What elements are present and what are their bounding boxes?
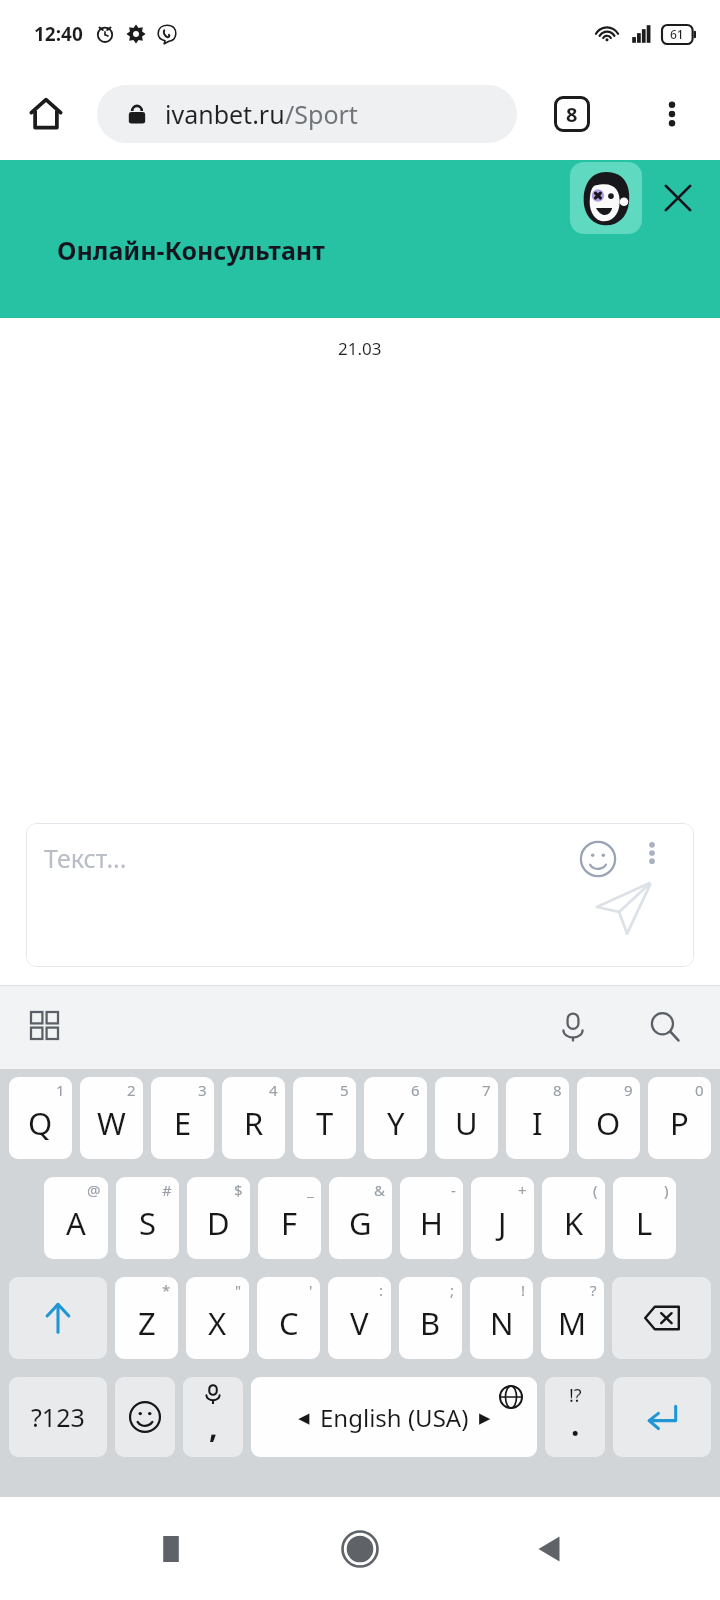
staticText: 2 <box>127 1080 136 1100</box>
button[interactable]: 7 <box>435 1077 498 1159</box>
staticText: 3 <box>198 1080 207 1100</box>
staticText: @ <box>87 1180 101 1200</box>
button[interactable]: 4 <box>222 1077 285 1159</box>
staticText: X <box>208 1302 227 1344</box>
button[interactable]: : <box>328 1277 391 1359</box>
button[interactable]: Recents <box>140 1518 202 1580</box>
staticText: 1 <box>56 1080 65 1100</box>
staticText: B <box>420 1302 441 1344</box>
staticText: J <box>498 1202 507 1244</box>
button[interactable]: ' <box>257 1277 320 1359</box>
staticText: $ <box>234 1180 243 1200</box>
button[interactable]: 6 <box>364 1077 427 1159</box>
staticText: 8 <box>553 1080 562 1100</box>
staticText: ivanbet.ru <box>165 97 285 131</box>
button[interactable]: 2 <box>80 1077 143 1159</box>
staticText: V <box>350 1302 369 1344</box>
button[interactable]: ! <box>470 1277 533 1359</box>
staticText: I <box>532 1102 543 1144</box>
button[interactable]: Search <box>638 1000 692 1054</box>
staticText: U <box>455 1102 478 1144</box>
staticText: C <box>279 1302 299 1344</box>
button[interactable]: 1 <box>9 1077 72 1159</box>
button[interactable]: ivanbet.ru <box>97 85 517 143</box>
button[interactable]: * <box>115 1277 178 1359</box>
button[interactable]: Emoji <box>115 1377 175 1457</box>
staticText: . <box>571 1404 580 1445</box>
button[interactable]: Chat menu <box>632 833 672 873</box>
staticText: Q <box>28 1102 53 1144</box>
staticText: ) <box>664 1180 669 1200</box>
staticText: O <box>596 1102 621 1144</box>
staticText: L <box>636 1202 653 1244</box>
staticText: 8 <box>566 101 578 128</box>
staticText: ?123 <box>31 1400 85 1434</box>
button[interactable]: Clipboard <box>20 1001 72 1053</box>
button[interactable]: ? <box>541 1277 604 1359</box>
staticText: , <box>209 1406 218 1447</box>
staticText: & <box>374 1180 385 1200</box>
staticText: D <box>207 1202 230 1244</box>
button[interactable]: ◀ <box>251 1377 537 1457</box>
staticText: !? <box>569 1383 582 1408</box>
button[interactable]: _ <box>258 1177 321 1259</box>
staticText: * <box>162 1280 171 1300</box>
staticText: Текст... <box>44 841 127 875</box>
button[interactable]: Comma <box>183 1377 243 1457</box>
staticText: ◀ <box>298 1409 310 1426</box>
staticText: S <box>139 1202 157 1244</box>
staticText: ' <box>309 1280 313 1300</box>
button[interactable]: Shift <box>9 1277 107 1359</box>
button[interactable]: Symbols <box>9 1377 107 1457</box>
staticText: 6 <box>411 1080 420 1100</box>
button[interactable]: ( <box>542 1177 605 1259</box>
button[interactable]: ) <box>613 1177 676 1259</box>
staticText: ▶ <box>479 1409 491 1426</box>
staticText: 21.03 <box>338 337 382 360</box>
button[interactable]: Текст... <box>26 823 694 967</box>
button[interactable]: Voice input <box>546 1000 600 1054</box>
button[interactable]: Send <box>588 871 660 943</box>
staticText: + <box>518 1180 527 1200</box>
staticText: Z <box>138 1302 156 1344</box>
button[interactable]: 3 <box>151 1077 214 1159</box>
button[interactable]: Home <box>20 88 72 140</box>
staticText: _ <box>307 1180 314 1200</box>
staticText: R <box>244 1102 264 1144</box>
staticText: Онлайн-Консультант <box>57 233 325 267</box>
button[interactable]: Backspace <box>612 1277 711 1359</box>
staticText: E <box>174 1102 192 1144</box>
staticText: G <box>349 1202 372 1244</box>
button[interactable]: Close <box>652 172 704 224</box>
staticText: ; <box>450 1280 455 1300</box>
button[interactable]: Enter <box>613 1377 711 1457</box>
button[interactable]: $ <box>187 1177 250 1259</box>
button[interactable]: 9 <box>577 1077 640 1159</box>
button[interactable]: Home <box>329 1518 391 1580</box>
button[interactable]: - <box>400 1177 463 1259</box>
button[interactable]: Emoji <box>574 835 622 883</box>
staticText: 9 <box>624 1080 633 1100</box>
button[interactable]: # <box>116 1177 179 1259</box>
button[interactable]: 0 <box>648 1077 711 1159</box>
button[interactable]: 5 <box>293 1077 356 1159</box>
button[interactable]: Back <box>518 1518 580 1580</box>
button[interactable]: + <box>471 1177 534 1259</box>
staticText: T <box>316 1102 334 1144</box>
button[interactable]: " <box>186 1277 249 1359</box>
button[interactable]: Tabs: 8 <box>543 85 601 143</box>
staticText: " <box>235 1280 242 1300</box>
staticText: : <box>379 1280 384 1300</box>
staticText: # <box>162 1180 172 1200</box>
staticText: ( <box>593 1180 598 1200</box>
button[interactable]: 8 <box>506 1077 569 1159</box>
button[interactable]: @ <box>44 1177 108 1259</box>
button[interactable]: & <box>329 1177 392 1259</box>
staticText: M <box>558 1302 587 1344</box>
button[interactable]: ; <box>399 1277 462 1359</box>
button[interactable]: Period <box>545 1377 605 1457</box>
staticText: F <box>281 1202 298 1244</box>
staticText: H <box>420 1202 443 1244</box>
button[interactable]: More options <box>646 88 698 140</box>
button[interactable]: Operator avatar <box>570 162 642 234</box>
